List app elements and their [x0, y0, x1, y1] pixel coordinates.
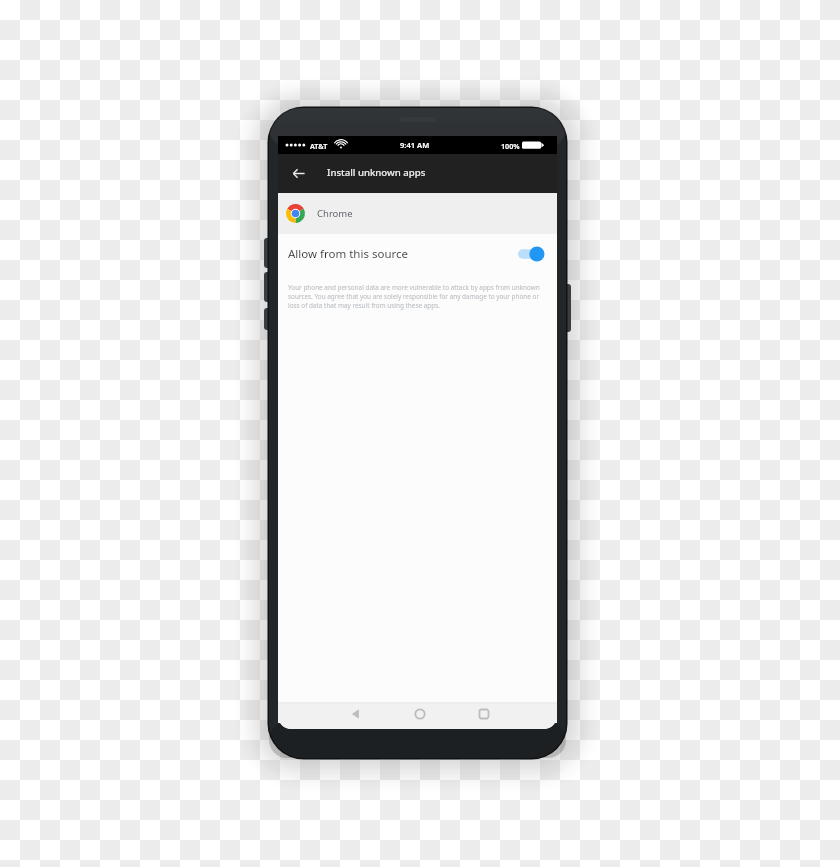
- staticText: Allow from this source: [288, 246, 409, 262]
- button[interactable]: Allow from this source: [278, 234, 557, 274]
- button[interactable]: Chrome: [278, 193, 557, 234]
- button[interactable]: Home: [408, 705, 432, 723]
- staticText: 9:41 AM: [400, 140, 430, 150]
- button[interactable]: Back: [281, 155, 317, 192]
- staticText: Install unknown apps: [327, 166, 426, 179]
- staticText: 100%: [501, 141, 520, 151]
- button[interactable]: Allow from this source toggle, on: [513, 241, 547, 267]
- button[interactable]: Back: [344, 705, 368, 723]
- staticText: Your phone and personal data are more vu…: [288, 283, 545, 310]
- staticText: Chrome: [317, 207, 353, 220]
- button[interactable]: Recent apps: [472, 705, 496, 723]
- staticText: AT&T: [310, 141, 328, 151]
